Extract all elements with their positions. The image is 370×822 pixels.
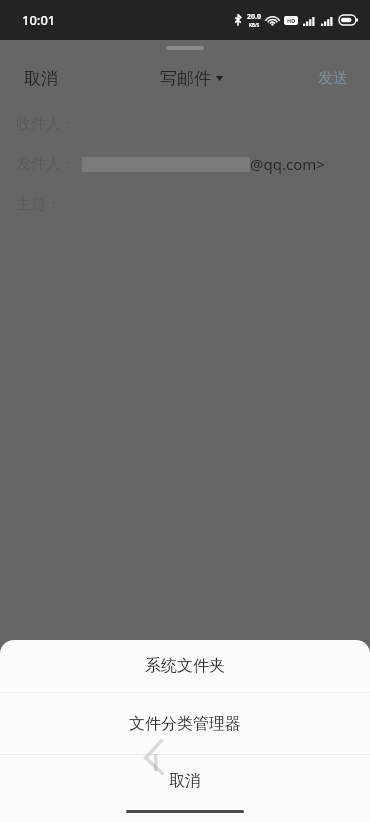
staticText: 文件分类管理器	[129, 714, 241, 734]
button[interactable]: Mail receipt	[126, 746, 160, 780]
button[interactable]: 取消	[0, 58, 82, 99]
button[interactable]: 取消	[0, 755, 370, 807]
staticText: 主题：	[16, 195, 61, 214]
staticText: 取消	[169, 771, 201, 791]
staticText: 发件人：	[16, 155, 76, 174]
staticText: 发送	[318, 69, 348, 88]
staticText: @qq.com>	[250, 154, 325, 174]
staticText: 系统文件夹	[145, 656, 225, 676]
button[interactable]: Schedule send	[182, 746, 216, 780]
staticText: 写邮件	[160, 68, 211, 89]
button[interactable]: 文件分类管理器	[0, 693, 370, 754]
button[interactable]: 发送	[296, 59, 370, 98]
staticText: 20.0	[247, 12, 261, 22]
staticText: KB/S	[249, 22, 260, 28]
staticText: 收件人：	[16, 115, 76, 134]
staticText: HD	[287, 17, 296, 24]
button[interactable]: 系统文件夹	[0, 640, 370, 692]
staticText: 取消	[24, 68, 58, 89]
staticText: 10:01	[22, 11, 56, 29]
button[interactable]: 写邮件	[154, 62, 229, 95]
